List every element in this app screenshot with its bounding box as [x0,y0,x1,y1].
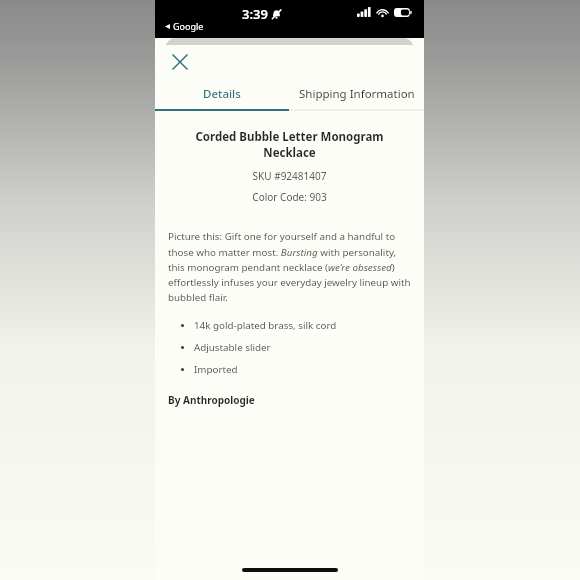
staticText: Google [173,20,204,32]
staticText: Details [203,86,241,102]
staticText: Picture this: Gift one for yourself and … [168,230,411,304]
staticText: Imported [194,363,238,376]
staticText: Adjustable slider [194,341,271,354]
button[interactable]: Shipping Information [289,79,424,109]
staticText: 14k gold-plated brass, silk cord [194,319,337,332]
staticText: Color Code: 903 [168,190,411,204]
button[interactable]: Details [155,79,289,109]
staticText: By Anthropologie [168,393,255,407]
staticText: Shipping Information [299,86,415,102]
staticText: 3:39 [242,5,268,23]
button[interactable]: Close [165,47,195,77]
staticText: SKU #92481407 [168,169,411,183]
staticText: Corded Bubble Letter Monogram Necklace [168,129,411,161]
